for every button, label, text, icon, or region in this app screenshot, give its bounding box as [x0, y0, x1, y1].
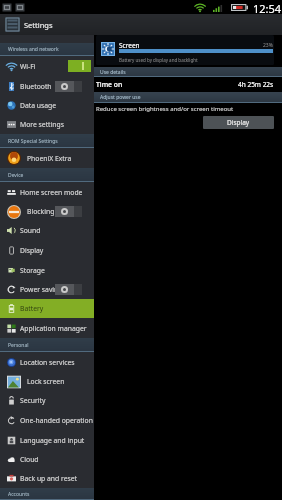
button[interactable]: Home screen mode: [0, 182, 94, 202]
staticText: Back up and reset: [20, 474, 78, 483]
staticText: 23%: [263, 42, 273, 49]
staticText: Display: [227, 118, 250, 127]
staticText: Time on: [96, 80, 123, 89]
button[interactable]: Use details: [94, 67, 282, 77]
staticText: One-handed operation: [20, 416, 93, 425]
button[interactable]: Blocking: [0, 202, 94, 221]
staticText: Adjust power use: [100, 94, 141, 101]
button[interactable]: Location services: [0, 352, 94, 372]
staticText: Wireless and network: [8, 46, 59, 53]
button[interactable]: Adjust power use: [94, 92, 282, 103]
staticText: Cloud: [20, 455, 39, 464]
button[interactable]: Cloud: [0, 450, 94, 469]
button[interactable]: Sound: [0, 221, 94, 240]
staticText: Personal: [8, 342, 29, 349]
button[interactable]: Screen: [96, 35, 274, 65]
button[interactable]: Storage: [0, 260, 94, 280]
button[interactable]: Power saving: [0, 280, 94, 299]
staticText: Accounts: [8, 491, 30, 498]
staticText: Power saving: [20, 285, 63, 294]
staticText: Lock screen: [27, 377, 65, 386]
staticText: Reduce screen brightness and/or screen t…: [96, 105, 234, 113]
button[interactable]: Display: [0, 240, 94, 260]
staticText: Sound: [20, 226, 41, 235]
staticText: ROM Special Settings: [8, 138, 58, 145]
staticText: Application manager: [20, 324, 87, 333]
button[interactable]: PhoeniX Extra: [0, 148, 94, 168]
button[interactable]: Wi-Fi: [0, 56, 94, 76]
button[interactable]: Wi-Fi on: [68, 60, 91, 72]
staticText: Location services: [20, 358, 75, 367]
staticText: Device: [8, 172, 24, 179]
button[interactable]: Back up and reset: [0, 469, 94, 488]
staticText: PhoeniX Extra: [27, 154, 72, 163]
button[interactable]: Time on: [94, 77, 282, 92]
staticText: Display: [20, 246, 44, 255]
button[interactable]: Lock screen: [0, 372, 94, 391]
staticText: Security: [20, 396, 46, 405]
staticText: Storage: [20, 266, 45, 275]
staticText: Home screen mode: [20, 188, 83, 197]
staticText: Blocking: [27, 207, 55, 216]
staticText: Battery used by display and backlight: [119, 57, 198, 63]
button[interactable]: Battery: [0, 299, 94, 318]
staticText: 4h 25m 22s: [238, 80, 274, 89]
staticText: Language and input: [20, 436, 85, 445]
button[interactable]: Application manager: [0, 318, 94, 338]
staticText: 12:54: [253, 1, 282, 15]
button[interactable]: Display: [203, 116, 274, 129]
staticText: Bluetooth: [20, 82, 52, 91]
button[interactable]: More settings: [0, 115, 94, 134]
staticText: Data usage: [20, 101, 57, 110]
staticText: Screen: [119, 41, 140, 50]
staticText: Wi-Fi: [20, 62, 36, 71]
staticText: Battery: [20, 304, 44, 313]
staticText: Settings: [24, 20, 53, 30]
staticText: More settings: [20, 120, 64, 129]
staticText: Use details: [100, 69, 126, 76]
button[interactable]: One-handed operation: [0, 410, 94, 430]
button[interactable]: Language and input: [0, 430, 94, 450]
button[interactable]: Settings: [5, 17, 53, 32]
button[interactable]: Off: [55, 284, 82, 295]
button[interactable]: Off: [55, 206, 82, 217]
button[interactable]: Data usage: [0, 96, 94, 115]
button[interactable]: Bluetooth: [0, 76, 94, 96]
button[interactable]: Off: [55, 81, 82, 92]
button[interactable]: Security: [0, 391, 94, 410]
